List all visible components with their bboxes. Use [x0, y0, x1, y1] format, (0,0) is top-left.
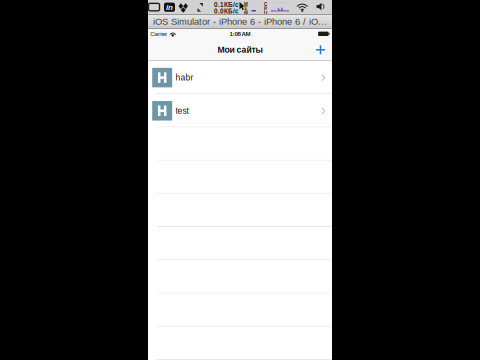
staticText: P — [264, 6, 267, 12]
button[interactable]: test — [148, 94, 332, 127]
staticText: in — [166, 3, 173, 12]
staticText: iOS Simulator - iPhone 6 - iPhone 6 / iO… — [153, 16, 327, 27]
button[interactable]: Add site — [309, 39, 332, 61]
staticText: E — [244, 6, 247, 12]
staticText: Carrier — [150, 30, 167, 37]
staticText: Мои сайты — [217, 45, 262, 55]
staticText: U — [264, 11, 267, 16]
staticText: 0.0КБ/с — [214, 8, 239, 15]
staticText: 0.1КБ/с — [214, 1, 239, 8]
staticText: habr — [175, 73, 193, 82]
staticText: M — [244, 11, 248, 16]
button[interactable]: habr — [148, 61, 332, 94]
staticText: M — [244, 2, 248, 7]
staticText: 1:08 AM — [229, 30, 250, 37]
staticText: C — [264, 2, 267, 7]
staticText: test — [175, 106, 188, 115]
